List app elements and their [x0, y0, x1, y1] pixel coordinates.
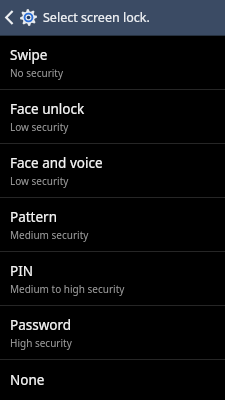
staticText: Face unlock [10, 100, 85, 118]
button[interactable]: Password [0, 306, 225, 359]
staticText: Pattern [10, 208, 58, 226]
staticText: PIN [10, 262, 34, 280]
staticText: Face and voice [10, 154, 103, 172]
other: Settings [19, 0, 37, 35]
staticText: No security [10, 66, 64, 80]
staticText: Medium to high security [10, 282, 125, 296]
staticText: High security [10, 336, 72, 350]
staticText: Low security [10, 120, 69, 134]
staticText: Password [10, 316, 72, 334]
staticText: Select screen lock. [43, 9, 150, 26]
button[interactable]: Back [0, 0, 19, 35]
button[interactable]: None [0, 360, 225, 400]
button[interactable]: Pattern [0, 198, 225, 251]
staticText: Swipe [10, 46, 48, 64]
button[interactable]: Face and voice [0, 144, 225, 197]
staticText: Medium security [10, 228, 89, 242]
staticText: None [10, 371, 45, 389]
button[interactable]: Face unlock [0, 90, 225, 143]
button[interactable]: Swipe [0, 36, 225, 89]
staticText: Low security [10, 174, 69, 188]
button[interactable]: PIN [0, 252, 225, 305]
